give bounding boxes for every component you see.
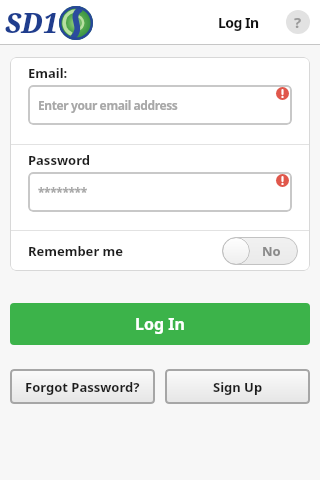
button[interactable]: ? xyxy=(286,10,310,34)
staticText: Log In xyxy=(218,13,259,32)
staticText: ? xyxy=(294,12,302,32)
staticText: Sign Up xyxy=(213,378,263,396)
staticText: Log In xyxy=(135,313,185,335)
staticText: Password xyxy=(28,151,90,169)
button[interactable]: Sign Up xyxy=(165,369,310,404)
button[interactable]: ******** xyxy=(28,172,292,212)
button[interactable]: Forgot Password? xyxy=(10,369,155,404)
staticText: Email: xyxy=(28,64,68,82)
staticText: No xyxy=(262,242,281,260)
button[interactable]: Enter your email address xyxy=(28,85,292,125)
button[interactable]: No xyxy=(222,237,298,265)
button[interactable]: Log In xyxy=(10,303,310,345)
staticText: ******** xyxy=(38,184,87,200)
staticText: SD1 xyxy=(5,4,58,41)
staticText: Forgot Password? xyxy=(25,378,140,396)
staticText: Remember me xyxy=(28,242,124,260)
staticText: Enter your email address xyxy=(38,97,178,113)
